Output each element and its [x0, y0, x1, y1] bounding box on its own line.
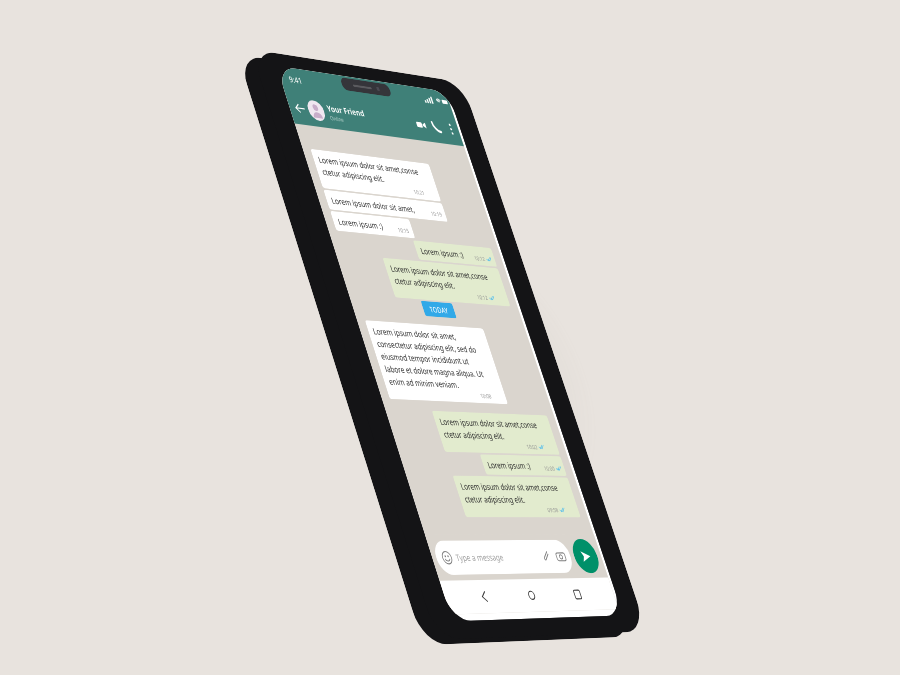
staticText: 10:15 — [397, 226, 410, 234]
staticText: 09:58 — [546, 506, 559, 513]
staticText: 10:19 — [430, 209, 443, 218]
staticText: 10:02 — [525, 442, 539, 450]
button[interactable]: Lorem ipsum :) — [413, 240, 497, 267]
button[interactable]: Lorem ipsum dolor sit amet,conse ctetur … — [432, 411, 560, 455]
button[interactable]: Back — [472, 584, 497, 609]
staticText: 10:12 — [476, 293, 489, 301]
staticText: TODAY — [428, 304, 450, 315]
button[interactable]: Lorem ipsum :) — [480, 454, 567, 476]
staticText: 9:41 — [287, 73, 304, 86]
button[interactable]: Type a message — [431, 540, 576, 575]
button[interactable]: Back — [288, 96, 311, 120]
button[interactable]: Call — [425, 116, 448, 138]
staticText: Lorem ipsum dolor sit amet, consectetur … — [371, 325, 490, 392]
button[interactable]: Lorem ipsum dolor sit amet,conse ctetur … — [452, 475, 581, 517]
staticText: Lorem ipsum dolor sit amet,conse ctetur … — [317, 154, 423, 189]
staticText: Lorem ipsum dolor sit amet, — [330, 195, 416, 215]
staticText: Lorem ipsum dolor sit amet,conse ctetur … — [389, 262, 493, 294]
staticText: Lorem ipsum :) — [419, 245, 465, 260]
staticText: Type a message — [454, 551, 505, 564]
button[interactable]: TODAY — [420, 301, 457, 318]
staticText: Your Friend — [325, 103, 366, 119]
button[interactable]: Lorem ipsum dolor sit amet, consectetur … — [365, 320, 508, 404]
staticText: 10:21 — [412, 188, 426, 196]
button[interactable]: Recents — [565, 582, 589, 606]
button[interactable]: Lorem ipsum dolor sit amet,conse ctetur … — [382, 258, 510, 307]
staticText: 10:12 — [473, 254, 486, 262]
staticText: 10:08 — [479, 391, 493, 400]
button[interactable]: Send — [568, 539, 603, 573]
button[interactable]: Video call — [410, 114, 432, 136]
button[interactable]: Lorem ipsum :) — [330, 211, 415, 239]
staticText: Lorem ipsum :) — [336, 216, 385, 232]
button[interactable]: More options — [441, 119, 461, 139]
staticText: Lorem ipsum :) — [486, 459, 532, 472]
staticText: Lorem ipsum dolor sit amet,conse ctetur … — [438, 415, 542, 443]
button[interactable]: Lorem ipsum dolor sit amet, — [323, 189, 448, 222]
button[interactable]: Home — [519, 583, 544, 608]
staticText: Online — [329, 114, 345, 123]
button[interactable]: Lorem ipsum dolor sit amet,conse ctetur … — [310, 149, 441, 202]
staticText: Lorem ipsum dolor sit amet,conse ctetur … — [459, 480, 563, 506]
staticText: 10:00 — [543, 464, 556, 472]
